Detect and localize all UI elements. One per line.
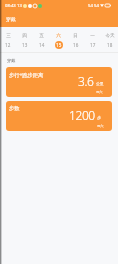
staticText: 周六 bbox=[97, 124, 104, 128]
staticText: 六 bbox=[56, 33, 61, 39]
staticText: 3.6 bbox=[78, 73, 94, 89]
button[interactable]: 今天 bbox=[101, 33, 118, 52]
staticText: 步数 bbox=[9, 105, 20, 112]
button[interactable]: 五 bbox=[33, 33, 50, 52]
staticText: 周六 bbox=[96, 90, 103, 94]
staticText: 步 bbox=[97, 115, 101, 120]
button[interactable]: 四 bbox=[16, 33, 33, 52]
staticText: 13 bbox=[22, 42, 28, 48]
staticText: 一 bbox=[90, 33, 95, 39]
button[interactable]: 三 bbox=[0, 33, 16, 52]
staticText: 今天 bbox=[105, 33, 115, 39]
staticText: 穿戴 bbox=[6, 16, 16, 22]
staticText: 08:43 bbox=[5, 3, 16, 9]
button[interactable]: 日 bbox=[67, 33, 84, 52]
staticText: 15 bbox=[56, 42, 62, 48]
staticText: 14 bbox=[39, 42, 45, 48]
staticText: 54 bbox=[88, 3, 93, 9]
button[interactable]: 一 bbox=[84, 33, 101, 52]
staticText: 五 bbox=[39, 33, 44, 39]
staticText: 穿戴 bbox=[7, 58, 16, 63]
staticText: 1200 bbox=[69, 107, 95, 123]
staticText: 公里 bbox=[96, 81, 104, 86]
staticText: 步行+跑步距离 bbox=[9, 71, 44, 78]
staticText: 四 bbox=[22, 33, 27, 39]
staticText: 13 bbox=[17, 3, 22, 9]
button[interactable]: 六 bbox=[50, 33, 67, 52]
staticText: 三 bbox=[6, 33, 11, 39]
button[interactable]: 步数 bbox=[6, 101, 112, 131]
staticText: 16 bbox=[73, 42, 79, 48]
staticText: 18 bbox=[107, 42, 113, 48]
staticText: 54 bbox=[94, 3, 99, 9]
button[interactable]: 步行+跑步距离 bbox=[6, 67, 112, 97]
staticText: 12 bbox=[5, 42, 11, 48]
staticText: 日 bbox=[73, 33, 78, 39]
staticText: 17 bbox=[90, 42, 96, 48]
